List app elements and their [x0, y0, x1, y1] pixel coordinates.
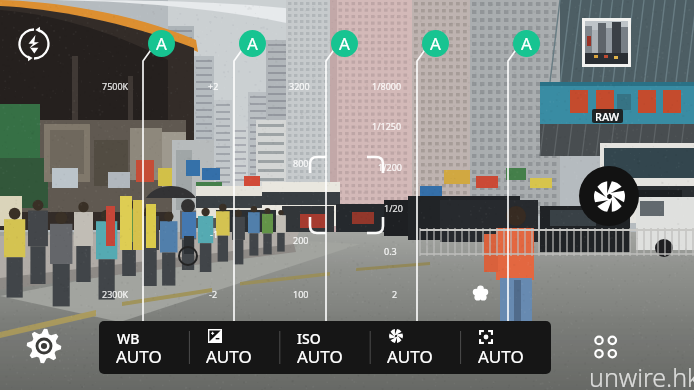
staticText: 100: [293, 288, 309, 300]
staticText: 2300K: [102, 288, 129, 300]
staticText: A: [521, 32, 532, 55]
button[interactable]: Last photo: [582, 18, 631, 67]
button[interactable]: Flash off: [18, 28, 50, 60]
button[interactable]: [461, 321, 551, 374]
staticText: -2: [209, 288, 218, 300]
button[interactable]: [280, 321, 370, 374]
button[interactable]: A: [422, 30, 449, 57]
staticText: +2: [208, 80, 219, 92]
button[interactable]: A: [513, 30, 540, 57]
staticText: A: [247, 32, 258, 55]
staticText: 1/200: [378, 161, 402, 173]
staticText: 3200: [289, 80, 310, 92]
staticText: AUTO: [116, 345, 162, 368]
button[interactable]: Shooting modes: [588, 330, 624, 366]
staticText: 2: [392, 288, 398, 300]
staticText: A: [430, 32, 441, 55]
button[interactable]: [189, 321, 279, 374]
staticText: 7500K: [102, 80, 129, 92]
button[interactable]: [370, 321, 460, 374]
staticText: 800: [293, 157, 309, 169]
button[interactable]: A: [148, 30, 175, 57]
staticText: AUTO: [297, 345, 343, 368]
staticText: 1/8000: [372, 80, 402, 92]
button[interactable]: A: [331, 30, 358, 57]
staticText: AUTO: [387, 345, 433, 368]
button[interactable]: Settings: [26, 328, 62, 364]
staticText: -1: [210, 228, 219, 240]
staticText: AUTO: [206, 345, 252, 368]
staticText: unwire.hk: [589, 360, 694, 390]
button[interactable]: RAW: [592, 109, 623, 123]
staticText: 200: [293, 234, 309, 246]
button[interactable]: A: [239, 30, 266, 57]
staticText: 1/1250: [372, 120, 402, 132]
staticText: AUTO: [478, 345, 524, 368]
staticText: A: [339, 32, 350, 55]
staticText: WB: [117, 329, 140, 348]
button[interactable]: [99, 321, 189, 374]
staticText: 1/20: [384, 202, 403, 214]
staticText: RAW: [595, 109, 620, 123]
staticText: A: [156, 32, 167, 55]
staticText: 0.3: [384, 245, 397, 257]
staticText: ISO: [297, 329, 321, 348]
button[interactable]: Shutter: [579, 166, 639, 226]
